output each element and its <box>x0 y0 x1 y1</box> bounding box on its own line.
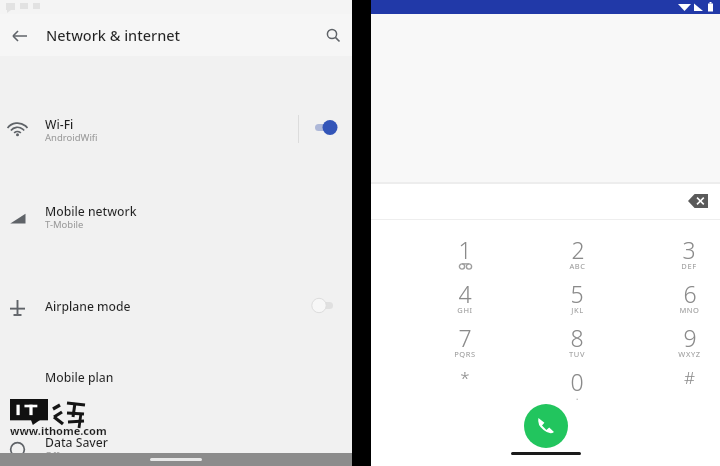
button[interactable]: 2 <box>546 234 608 276</box>
button[interactable]: Mobile network <box>0 199 352 239</box>
staticText: 7 <box>458 322 472 353</box>
staticText: 6 <box>683 278 697 309</box>
button[interactable]: Data Saver <box>0 430 352 466</box>
button[interactable]: Call <box>524 404 568 448</box>
button[interactable]: Search <box>320 22 346 48</box>
button[interactable]: # <box>658 366 720 408</box>
button[interactable]: Wi-Fi toggle <box>314 120 338 135</box>
button[interactable]: 0 <box>546 366 608 408</box>
staticText: T-Mobile <box>45 218 84 231</box>
button[interactable]: 5 <box>546 278 608 320</box>
staticText: JKL <box>571 305 584 315</box>
button[interactable]: 6 <box>658 278 720 320</box>
staticText: Mobile network <box>45 203 137 220</box>
staticText: 4 <box>458 278 472 309</box>
button[interactable]: 7 <box>434 322 496 364</box>
staticText: TUV <box>569 349 585 359</box>
staticText: 1 <box>458 234 472 265</box>
button[interactable]: Wi-Fi <box>0 112 352 152</box>
button[interactable]: Mobile plan <box>0 361 352 395</box>
button[interactable]: Airplane mode <box>0 290 352 324</box>
staticText: AndroidWifi <box>45 131 98 144</box>
staticText: DEF <box>681 261 697 271</box>
staticText: 5 <box>570 278 584 309</box>
staticText: 8 <box>570 322 584 353</box>
staticText: PQRS <box>454 349 476 359</box>
staticText: GHI <box>457 305 473 315</box>
staticText: Airplane mode <box>45 298 131 315</box>
staticText: MNO <box>679 305 700 315</box>
staticText: Data Saver <box>45 434 108 451</box>
staticText: www.ithome.com <box>10 423 107 438</box>
staticText: Wi-Fi <box>45 116 74 133</box>
staticText: 3 <box>682 234 696 265</box>
button[interactable]: 8 <box>546 322 608 364</box>
button[interactable]: * <box>434 366 496 408</box>
button[interactable]: Airplane mode toggle <box>311 298 335 313</box>
staticText: WXYZ <box>678 349 701 359</box>
button[interactable]: 9 <box>658 322 720 364</box>
staticText: 2 <box>571 234 585 265</box>
button[interactable]: Backspace <box>688 194 708 208</box>
staticText: Mobile plan <box>45 369 114 386</box>
button[interactable]: Back <box>6 22 34 50</box>
staticText: # <box>684 366 695 389</box>
staticText: 9 <box>683 322 697 353</box>
button[interactable]: 4 <box>434 278 496 320</box>
staticText: 0 <box>570 366 584 397</box>
staticText: * <box>460 366 470 389</box>
staticText: + <box>574 393 581 404</box>
staticText: ABC <box>569 261 586 271</box>
button[interactable]: 1 <box>434 234 496 276</box>
button[interactable]: 3 <box>658 234 720 276</box>
staticText: Off <box>45 449 59 462</box>
staticText: Network & internet <box>46 25 181 45</box>
